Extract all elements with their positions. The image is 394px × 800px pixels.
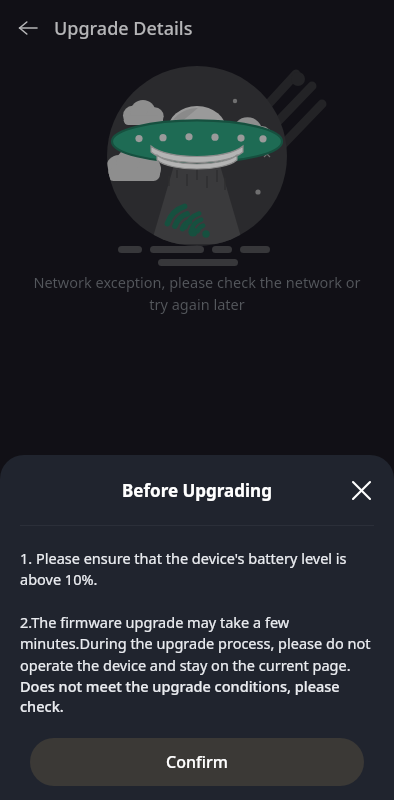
button[interactable]: Confirm — [30, 738, 364, 786]
staticText: Does not meet the upgrade conditions, pl… — [20, 676, 374, 716]
staticText: Upgrade Details — [54, 16, 193, 41]
staticText: 1. Please ensure that the device's batte… — [20, 548, 374, 590]
staticText: 2.The firmware upgrade may take a few mi… — [20, 612, 374, 676]
button[interactable]: Back — [12, 12, 44, 44]
staticText: Confirm — [166, 751, 228, 773]
button[interactable]: Close — [344, 473, 378, 507]
staticText: Network exception, please check the netw… — [26, 272, 368, 314]
staticText: Before Upgrading — [122, 479, 272, 502]
